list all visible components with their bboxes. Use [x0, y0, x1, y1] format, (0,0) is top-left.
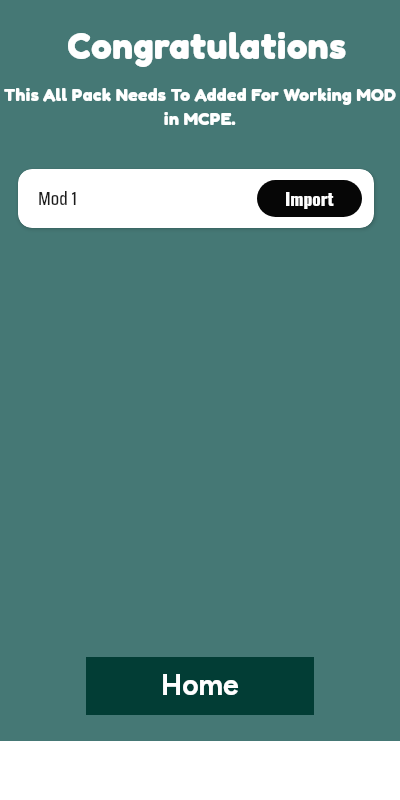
staticText: Mod 1 [38, 183, 77, 213]
staticText: This All Pack Needs To Added For Working… [0, 84, 400, 129]
staticText: Congratulations [7, 23, 400, 67]
button[interactable]: Home [86, 657, 314, 715]
button[interactable]: Import [257, 180, 362, 217]
button[interactable]: Mod 1 [18, 169, 374, 228]
staticText: Import [285, 185, 334, 211]
staticText: Home [161, 668, 239, 702]
